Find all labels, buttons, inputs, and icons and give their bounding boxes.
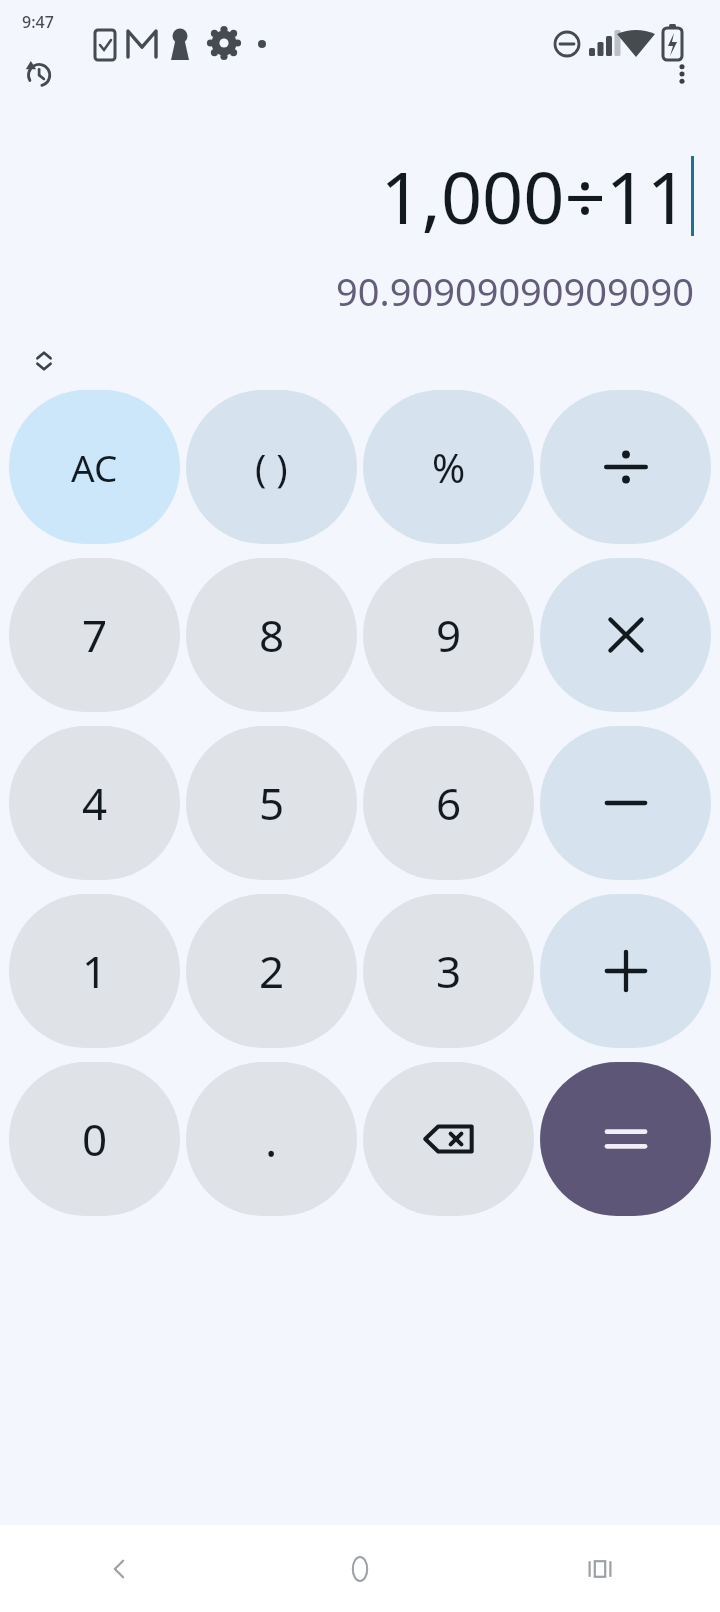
button[interactable]: 0 (9, 1062, 180, 1216)
button[interactable]: Back (0, 1525, 240, 1612)
staticText: 3 (436, 941, 462, 1001)
staticText: 7 (82, 605, 108, 665)
button[interactable]: 5 (186, 726, 357, 880)
staticText: 1 (82, 941, 108, 1001)
staticText: ( ) (255, 441, 288, 493)
button[interactable]: Expand result (22, 339, 66, 383)
button[interactable]: 2 (186, 894, 357, 1048)
staticText: 9 (436, 605, 462, 665)
staticText: AC (71, 442, 118, 492)
staticText: 5 (259, 773, 285, 833)
button[interactable]: 7 (9, 558, 180, 712)
staticText: 2 (259, 941, 285, 1001)
button[interactable]: Home (240, 1525, 480, 1612)
button[interactable]: AC (9, 390, 180, 544)
button[interactable]: 4 (9, 726, 180, 880)
button[interactable]: 8 (186, 558, 357, 712)
button[interactable]: 3 (363, 894, 534, 1048)
button[interactable] (540, 894, 711, 1048)
button[interactable]: 1 (9, 894, 180, 1048)
button[interactable] (540, 726, 711, 880)
staticText: 1,000÷11 (380, 147, 688, 245)
staticText: . (265, 1108, 278, 1171)
button[interactable]: Backspace (363, 1062, 534, 1216)
staticText: % (432, 440, 466, 494)
staticText: 9:47 (22, 11, 54, 33)
button[interactable]: 9 (363, 558, 534, 712)
button[interactable]: Recent apps (480, 1525, 720, 1612)
button[interactable]: % (363, 390, 534, 544)
button[interactable]: History (14, 50, 62, 98)
staticText: 6 (436, 773, 462, 833)
button[interactable] (540, 1062, 711, 1216)
staticText: 4 (82, 773, 108, 833)
staticText: 8 (259, 605, 285, 665)
staticText: 0 (82, 1109, 108, 1169)
button[interactable] (540, 390, 711, 544)
button[interactable]: 6 (363, 726, 534, 880)
button[interactable]: More options (658, 50, 706, 98)
button[interactable]: ( ) (186, 390, 357, 544)
button[interactable] (540, 558, 711, 712)
staticText: 90.90909090909090 (336, 265, 694, 317)
button[interactable]: . (186, 1062, 357, 1216)
